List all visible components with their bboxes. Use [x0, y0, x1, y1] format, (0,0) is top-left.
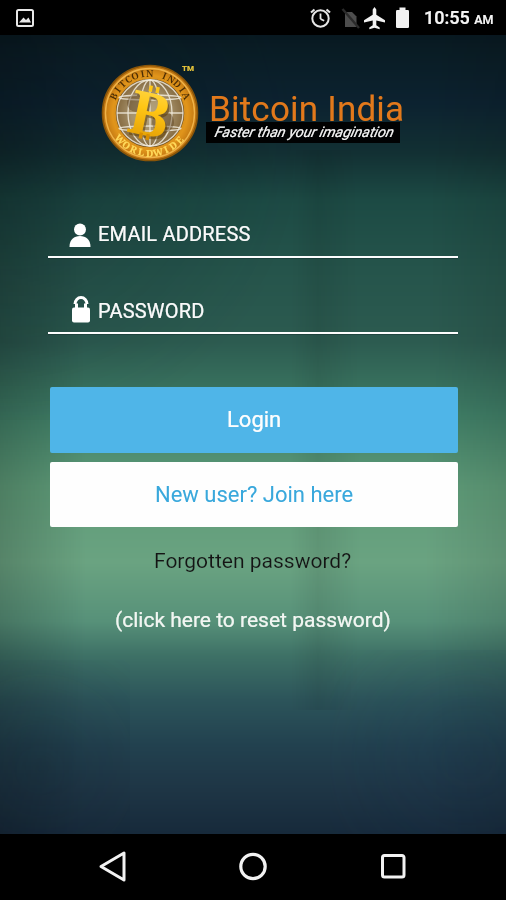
- staticText: Faster than your imagination: [214, 124, 393, 141]
- button[interactable]: (click here to reset password): [115, 608, 391, 633]
- button[interactable]: Login: [50, 387, 458, 453]
- button[interactable]: EMAIL ADDRESS: [48, 214, 458, 260]
- staticText: 10:55 AM: [424, 7, 494, 28]
- button[interactable]: [229, 843, 277, 891]
- staticText: EMAIL ADDRESS: [98, 222, 251, 245]
- button[interactable]: PASSWORD: [48, 290, 458, 336]
- button[interactable]: [369, 843, 417, 891]
- staticText: TM: [182, 64, 194, 73]
- staticText: Bitcoin India: [209, 89, 405, 130]
- button[interactable]: [88, 843, 136, 891]
- staticText: Login: [227, 407, 282, 433]
- staticText: New user? Join here: [155, 482, 354, 508]
- button[interactable]: New user? Join here: [50, 462, 458, 527]
- staticText: PASSWORD: [98, 299, 205, 322]
- button[interactable]: Forgotten password?: [154, 549, 352, 574]
